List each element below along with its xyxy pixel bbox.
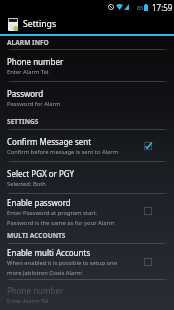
button[interactable]: Password <box>0 82 174 114</box>
staticText: Enter Password at program start. Passwor… <box>7 209 115 226</box>
staticText: Phone number <box>7 285 64 296</box>
staticText: Selected: Both <box>7 180 46 188</box>
button[interactable]: Phone number <box>0 50 174 81</box>
staticText: MULTI ACCOUNTS <box>7 231 66 240</box>
staticText: Select PGX or PGY <box>7 168 75 179</box>
staticText: Password for Alarm <box>7 100 61 108</box>
staticText: Enter Alarm Tel. <box>7 297 50 305</box>
staticText: Enable password <box>7 197 71 208</box>
staticText: 65 <box>137 4 143 11</box>
staticText: ALARM INFO <box>7 38 49 47</box>
button[interactable]: Enable password <box>0 194 174 228</box>
staticText: SETTINGS <box>7 117 39 126</box>
staticText: Settings <box>23 18 57 30</box>
staticText: When enabled it is possible to setup one… <box>7 259 117 276</box>
staticText: Enable multi Accounts <box>7 247 91 258</box>
staticText: Enter Alarm Tel. <box>7 68 50 76</box>
button[interactable]: Confirm Message sent <box>0 130 174 161</box>
staticText: Phone number <box>7 56 64 67</box>
staticText: 17:59 <box>152 2 173 13</box>
staticText: Confirm before message is sent to Alarm <box>7 148 119 156</box>
button[interactable]: Phone number <box>0 280 174 310</box>
button[interactable]: Select PGX or PGY <box>0 162 174 193</box>
other: Silent mode <box>108 4 114 10</box>
button[interactable]: Enable multi Accounts <box>0 244 174 279</box>
staticText: Password <box>7 88 44 99</box>
staticText: Confirm Message sent <box>7 136 92 147</box>
